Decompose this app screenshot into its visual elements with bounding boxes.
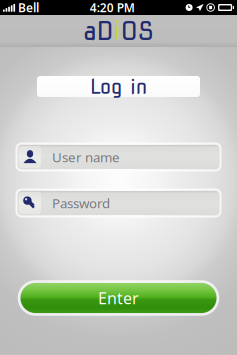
staticText: 4:20 PM (90, 0, 135, 15)
staticText: Enter (98, 287, 139, 309)
staticText: aD (83, 16, 113, 46)
button[interactable]: User name (18, 145, 219, 169)
staticText: i (113, 16, 120, 46)
button[interactable]: Password (18, 191, 219, 215)
staticText: Log in (90, 74, 147, 98)
staticText: OS (120, 16, 153, 46)
button[interactable]: Enter (20, 283, 216, 313)
staticText: User name (52, 148, 120, 166)
staticText: Bell (18, 0, 39, 15)
staticText: Password (52, 194, 110, 212)
